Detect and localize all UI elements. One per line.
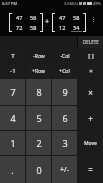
staticText: + [88, 113, 93, 124]
staticText: 3.06K/s [64, 1, 78, 6]
staticText: 34 [73, 24, 80, 31]
button[interactable]: 7 [0, 79, 25, 105]
staticText: +/- [60, 165, 69, 175]
button[interactable]: [ ] [78, 49, 103, 63]
staticText: -Row [33, 53, 45, 60]
staticText: 5 [36, 112, 42, 124]
staticText: × [88, 87, 93, 98]
staticText: × [89, 67, 93, 75]
button[interactable]: -1 [0, 64, 25, 78]
staticText: +Col [59, 68, 70, 75]
staticText: 47 [16, 14, 23, 21]
staticText: 4 [10, 112, 16, 124]
button[interactable]: -Row [26, 49, 51, 63]
staticText: 58 [73, 14, 80, 21]
staticText: 58 [30, 24, 37, 31]
staticText: [ ] [88, 52, 94, 60]
button[interactable]: DELETE [78, 36, 103, 48]
staticText: 56 [30, 14, 37, 21]
button[interactable]: +/- [52, 156, 77, 183]
staticText: -1 [10, 67, 16, 75]
staticText: 6:37 PM [2, 1, 18, 6]
staticText: 12 [59, 24, 66, 31]
button[interactable]: 0 [26, 156, 51, 183]
button[interactable]: 9 [52, 79, 77, 105]
staticText: = [88, 164, 93, 175]
button[interactable]: × [78, 79, 103, 105]
staticText: 0 [36, 164, 42, 176]
button[interactable]: 2 [26, 131, 51, 155]
staticText: 8 [36, 86, 42, 98]
button[interactable]: T [0, 49, 25, 63]
button[interactable]: × [78, 64, 103, 78]
staticText: +Row [32, 68, 45, 75]
button[interactable]: + [78, 106, 103, 130]
button[interactable]: +Row [26, 64, 51, 78]
button[interactable]: More options [93, 17, 94, 22]
button[interactable]: 5 [26, 106, 51, 130]
button[interactable]: 8 [26, 79, 51, 105]
staticText: 6 [62, 112, 68, 124]
staticText: 7 [10, 86, 16, 98]
staticText: DELETE [83, 39, 99, 45]
button[interactable]: . [0, 156, 25, 183]
button[interactable]: 4 [0, 106, 25, 130]
staticText: T [11, 52, 15, 60]
staticText: 1 [10, 137, 16, 149]
staticText: -Col [60, 53, 70, 60]
button[interactable]: 6 [52, 106, 77, 130]
button[interactable]: 3 [52, 131, 77, 155]
staticText: 47 [59, 14, 66, 21]
button[interactable]: -Col [52, 49, 77, 63]
staticText: + [45, 17, 50, 27]
button[interactable]: = [78, 156, 103, 183]
staticText: 9 [62, 86, 68, 98]
staticText: 3 [62, 137, 68, 149]
button[interactable]: Move [78, 131, 103, 155]
staticText: 2 [36, 137, 42, 149]
staticText: Move [84, 140, 97, 147]
staticText: 72 [16, 24, 23, 31]
staticText: . [11, 164, 14, 176]
button[interactable]: 1 [0, 131, 25, 155]
staticText: 49% [93, 1, 101, 6]
button[interactable]: +Col [52, 64, 77, 78]
